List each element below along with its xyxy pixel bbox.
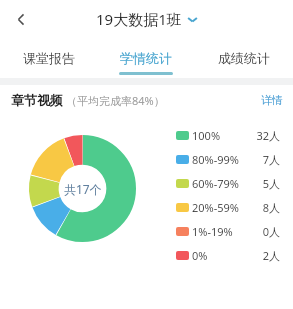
staticText: 详情 — [261, 93, 283, 107]
staticText: 学情统计 — [120, 50, 172, 66]
button[interactable]: Back — [5, 3, 37, 35]
staticText: 8人 — [262, 200, 280, 215]
staticText: （平均完成率84%） — [66, 93, 165, 108]
staticText: 100% — [192, 128, 221, 143]
button[interactable]: 100% — [176, 123, 284, 147]
staticText: 成绩统计 — [218, 50, 270, 66]
staticText: 0% — [192, 248, 208, 263]
button[interactable]: 60%-79% — [176, 171, 284, 195]
staticText: 32人 — [256, 128, 280, 143]
staticText: 2人 — [262, 248, 280, 263]
button[interactable]: 详情 — [251, 88, 293, 112]
button[interactable]: 0% — [176, 243, 284, 267]
button[interactable]: 20%-59% — [176, 195, 284, 219]
button[interactable]: 学情统计 — [97, 38, 195, 78]
staticText: 课堂报告 — [23, 50, 75, 66]
staticText: 1%-19% — [192, 224, 233, 239]
button[interactable]: 19大数据1班 — [96, 9, 198, 29]
staticText: 60%-79% — [192, 176, 239, 191]
button[interactable]: 1%-19% — [176, 219, 284, 243]
staticText: 7人 — [262, 152, 280, 167]
staticText: 19大数据1班 — [96, 9, 182, 29]
button[interactable]: 80%-99% — [176, 147, 284, 171]
staticText: 0人 — [262, 224, 280, 239]
staticText: 80%-99% — [192, 152, 239, 167]
staticText: 章节视频 — [11, 92, 63, 108]
staticText: 共17个 — [64, 181, 102, 197]
button[interactable]: 课堂报告 — [0, 38, 97, 78]
button[interactable]: 成绩统计 — [195, 38, 293, 78]
staticText: 20%-59% — [192, 200, 239, 215]
staticText: 5人 — [262, 176, 280, 191]
